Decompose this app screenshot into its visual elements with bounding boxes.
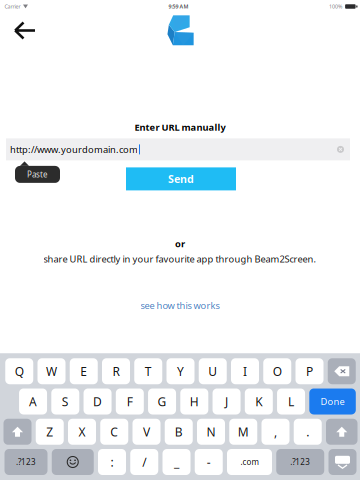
- button[interactable]: L: [277, 388, 305, 414]
- staticText: 100%: [329, 3, 342, 10]
- staticText: .com: [240, 457, 258, 467]
- button[interactable]: Delete: [328, 358, 356, 384]
- staticText: Done: [321, 395, 345, 408]
- staticText: V: [143, 424, 150, 440]
- button[interactable]: see how this works: [140, 299, 219, 312]
- staticText: or: [175, 237, 185, 250]
- button[interactable]: .?123: [4, 449, 47, 475]
- staticText: _: [174, 454, 179, 470]
- staticText: H: [190, 393, 199, 409]
- button[interactable]: /: [130, 449, 158, 475]
- staticText: Q: [15, 363, 24, 379]
- button[interactable]: Y: [166, 358, 194, 384]
- button[interactable]: D: [83, 388, 111, 414]
- staticText: W: [46, 363, 57, 379]
- staticText: F: [127, 393, 133, 409]
- staticText: S: [62, 393, 69, 409]
- staticText: K: [255, 393, 262, 409]
- staticText: .?123: [290, 457, 310, 467]
- button[interactable]: H: [180, 388, 208, 414]
- button[interactable]: Q: [5, 358, 33, 384]
- button[interactable]: P: [295, 358, 323, 384]
- staticText: Enter URL manually: [134, 121, 225, 133]
- button[interactable]: U: [199, 358, 227, 384]
- button[interactable]: I: [231, 358, 259, 384]
- button[interactable]: Shift: [3, 419, 31, 445]
- staticText: -: [207, 454, 211, 470]
- staticText: Y: [177, 363, 184, 379]
- staticText: P: [306, 363, 313, 379]
- staticText: G: [157, 393, 166, 409]
- staticText: B: [175, 424, 183, 440]
- button[interactable]: O: [263, 358, 291, 384]
- button[interactable]: Send: [126, 167, 236, 190]
- button[interactable]: M: [229, 419, 257, 445]
- staticText: T: [145, 363, 152, 379]
- button[interactable]: F: [116, 388, 144, 414]
- staticText: U: [208, 363, 217, 379]
- button[interactable]: .?123: [276, 449, 324, 475]
- button[interactable]: R: [102, 358, 130, 384]
- button[interactable]: Emoji: [52, 449, 94, 475]
- staticText: .?123: [16, 457, 36, 467]
- staticText: http://www.yourdomain.com: [10, 143, 138, 156]
- button[interactable]: :: [98, 449, 126, 475]
- button[interactable]: S: [51, 388, 79, 414]
- staticText: A: [29, 393, 37, 409]
- staticText: Z: [46, 424, 53, 440]
- button[interactable]: -: [195, 449, 223, 475]
- button[interactable]: E: [70, 358, 98, 384]
- button[interactable]: J: [212, 388, 240, 414]
- staticText: M: [238, 424, 249, 440]
- button[interactable]: ,: [261, 419, 289, 445]
- staticText: /: [142, 454, 146, 470]
- staticText: O: [273, 363, 282, 379]
- staticText: share URL directly in your favourite app…: [43, 253, 316, 265]
- button[interactable]: Shift: [326, 419, 357, 445]
- staticText: R: [112, 363, 119, 379]
- staticText: .: [306, 424, 309, 440]
- staticText: Carrier: [4, 3, 20, 10]
- staticText: L: [288, 393, 294, 409]
- staticText: J: [225, 393, 228, 409]
- button[interactable]: .com: [227, 449, 272, 475]
- staticText: Send: [168, 172, 194, 186]
- button[interactable]: A: [19, 388, 47, 414]
- staticText: Paste: [27, 169, 48, 180]
- button[interactable]: K: [245, 388, 273, 414]
- button[interactable]: Paste: [15, 161, 60, 183]
- button[interactable]: .: [294, 419, 322, 445]
- staticText: see how this works: [140, 299, 219, 312]
- button[interactable]: T: [134, 358, 162, 384]
- staticText: :: [110, 454, 113, 470]
- button[interactable]: G: [148, 388, 176, 414]
- staticText: C: [110, 424, 118, 440]
- button[interactable]: N: [197, 419, 225, 445]
- staticText: E: [80, 363, 87, 379]
- button[interactable]: Done: [309, 388, 356, 414]
- button[interactable]: _: [162, 449, 190, 475]
- button[interactable]: X: [68, 419, 96, 445]
- button[interactable]: W: [37, 358, 65, 384]
- button[interactable]: Back: [4, 13, 46, 47]
- staticText: 9:59 AM: [169, 3, 189, 10]
- staticText: D: [93, 393, 102, 409]
- button[interactable]: V: [132, 419, 160, 445]
- button[interactable]: Hide Keyboard: [328, 449, 356, 475]
- staticText: X: [78, 424, 85, 440]
- button[interactable]: B: [165, 419, 193, 445]
- staticText: I: [243, 363, 247, 379]
- button[interactable]: C: [100, 419, 128, 445]
- staticText: ,: [274, 424, 277, 440]
- button[interactable]: Z: [36, 419, 64, 445]
- staticText: N: [206, 424, 215, 440]
